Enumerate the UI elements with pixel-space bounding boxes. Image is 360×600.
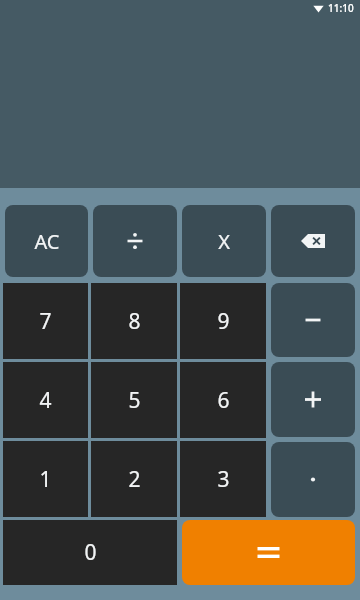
button[interactable]: 0 — [3, 520, 177, 585]
staticText: X — [218, 228, 230, 255]
staticText: 3 — [217, 465, 230, 494]
button[interactable]: 3 — [180, 441, 266, 517]
button[interactable]: Equals — [182, 520, 355, 585]
staticText: 9 — [217, 307, 230, 336]
button[interactable]: 9 — [180, 283, 266, 359]
staticText: 4 — [39, 386, 52, 415]
staticText: 6 — [217, 386, 230, 415]
button[interactable]: Backspace — [271, 205, 355, 277]
button[interactable]: Plus — [271, 362, 355, 437]
staticText: AC — [34, 228, 60, 255]
staticText: 5 — [128, 386, 141, 415]
button[interactable]: X — [182, 205, 266, 277]
staticText: 8 — [128, 307, 141, 336]
button[interactable]: AC — [5, 205, 88, 277]
button[interactable]: 4 — [3, 362, 88, 438]
button[interactable]: 5 — [91, 362, 177, 438]
staticText: 2 — [128, 465, 141, 494]
button[interactable]: 6 — [180, 362, 266, 438]
button[interactable]: Divide — [93, 205, 177, 277]
button[interactable]: 7 — [3, 283, 88, 359]
staticText: 1 — [39, 465, 52, 494]
staticText: 7 — [39, 307, 52, 336]
button[interactable]: 2 — [91, 441, 177, 517]
button[interactable]: 1 — [3, 441, 88, 517]
button[interactable]: Minus — [271, 283, 355, 357]
staticText: 11:10 — [328, 1, 354, 15]
button[interactable]: Decimal point — [271, 442, 355, 517]
button[interactable]: 8 — [91, 283, 177, 359]
staticText: 0 — [84, 538, 97, 567]
